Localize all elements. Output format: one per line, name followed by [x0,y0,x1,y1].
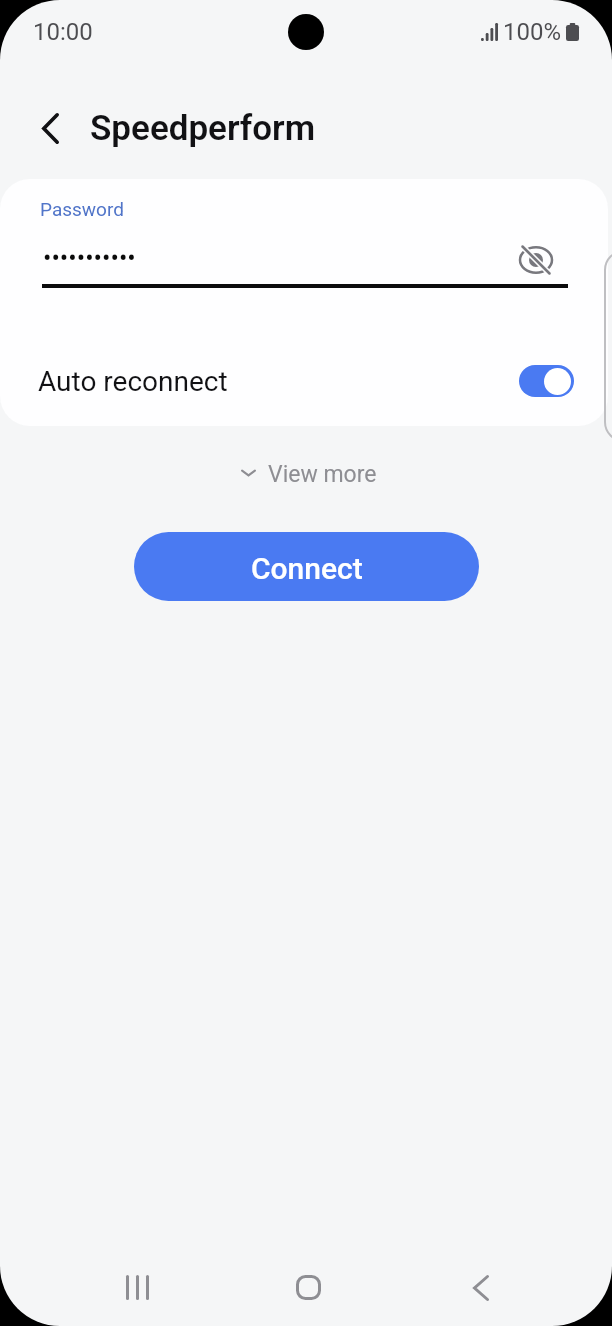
button[interactable]: Auto reconnect [0,351,608,411]
staticText: Auto reconnect [38,365,228,398]
staticText: Connect [251,551,363,586]
button[interactable]: Recent apps [113,1263,162,1312]
staticText: Speedperform [90,108,316,149]
staticText: 10:00 [33,18,93,46]
staticText: ••••••••••• [43,244,136,273]
staticText: 100% [503,18,562,46]
button[interactable]: Hide password [514,238,558,282]
staticText: View more [268,461,377,488]
button[interactable]: Home [284,1263,333,1312]
button[interactable]: Back [456,1263,505,1312]
staticText: Password [40,198,124,220]
button[interactable]: View more [239,461,377,488]
button[interactable]: Back [26,104,74,152]
button[interactable]: Connect [134,532,479,601]
